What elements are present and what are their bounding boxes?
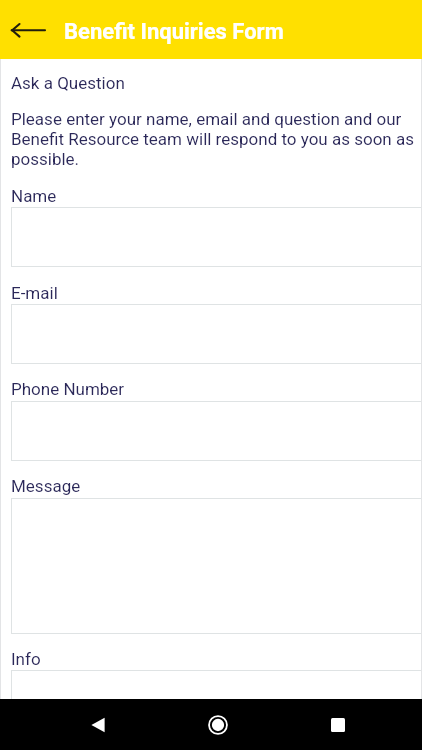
staticText: Name — [11, 186, 57, 206]
button[interactable]: Home — [178, 699, 258, 750]
staticText: Info — [11, 649, 41, 669]
button[interactable] — [11, 670, 422, 699]
button[interactable] — [11, 498, 422, 634]
button[interactable] — [11, 207, 422, 267]
button[interactable]: Recent apps — [298, 699, 378, 750]
staticText: Please enter your name, email and questi… — [11, 109, 415, 169]
staticText: Benefit Inquiries Form — [64, 19, 284, 45]
button[interactable]: Back — [58, 699, 138, 750]
staticText: E-mail — [11, 283, 58, 303]
button[interactable]: Back — [0, 0, 58, 59]
button[interactable] — [11, 401, 422, 461]
staticText: Phone Number — [11, 379, 125, 399]
staticText: Message — [11, 476, 81, 496]
staticText: Ask a Question — [11, 73, 125, 93]
button[interactable] — [11, 304, 422, 364]
